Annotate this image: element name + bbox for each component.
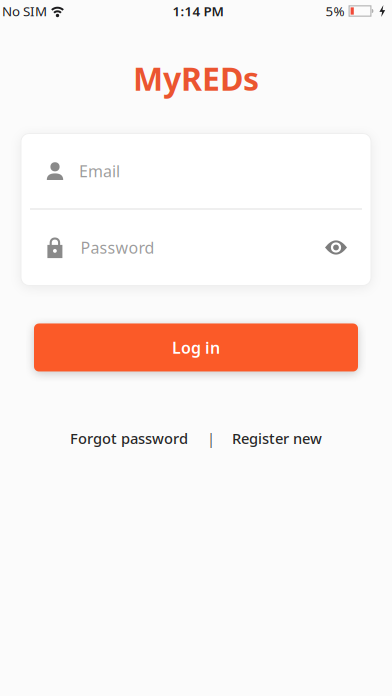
- staticText: Log in: [172, 337, 220, 358]
- button[interactable]: Email: [21, 133, 371, 208]
- staticText: 5%: [325, 2, 344, 20]
- staticText: 1:14 PM: [172, 2, 223, 20]
- button[interactable]: Register new: [232, 428, 322, 448]
- button[interactable]: Show password: [325, 209, 371, 285]
- staticText: Password: [80, 237, 154, 258]
- staticText: Register new: [232, 428, 322, 448]
- button[interactable]: Log in: [34, 323, 358, 371]
- staticText: No SIM: [2, 2, 47, 20]
- button[interactable]: Forgot password: [70, 428, 188, 448]
- staticText: Forgot password: [70, 428, 188, 448]
- staticText: |: [207, 428, 215, 448]
- staticText: MyREDs: [133, 57, 259, 99]
- staticText: Email: [79, 160, 120, 182]
- button[interactable]: Password: [21, 209, 325, 285]
